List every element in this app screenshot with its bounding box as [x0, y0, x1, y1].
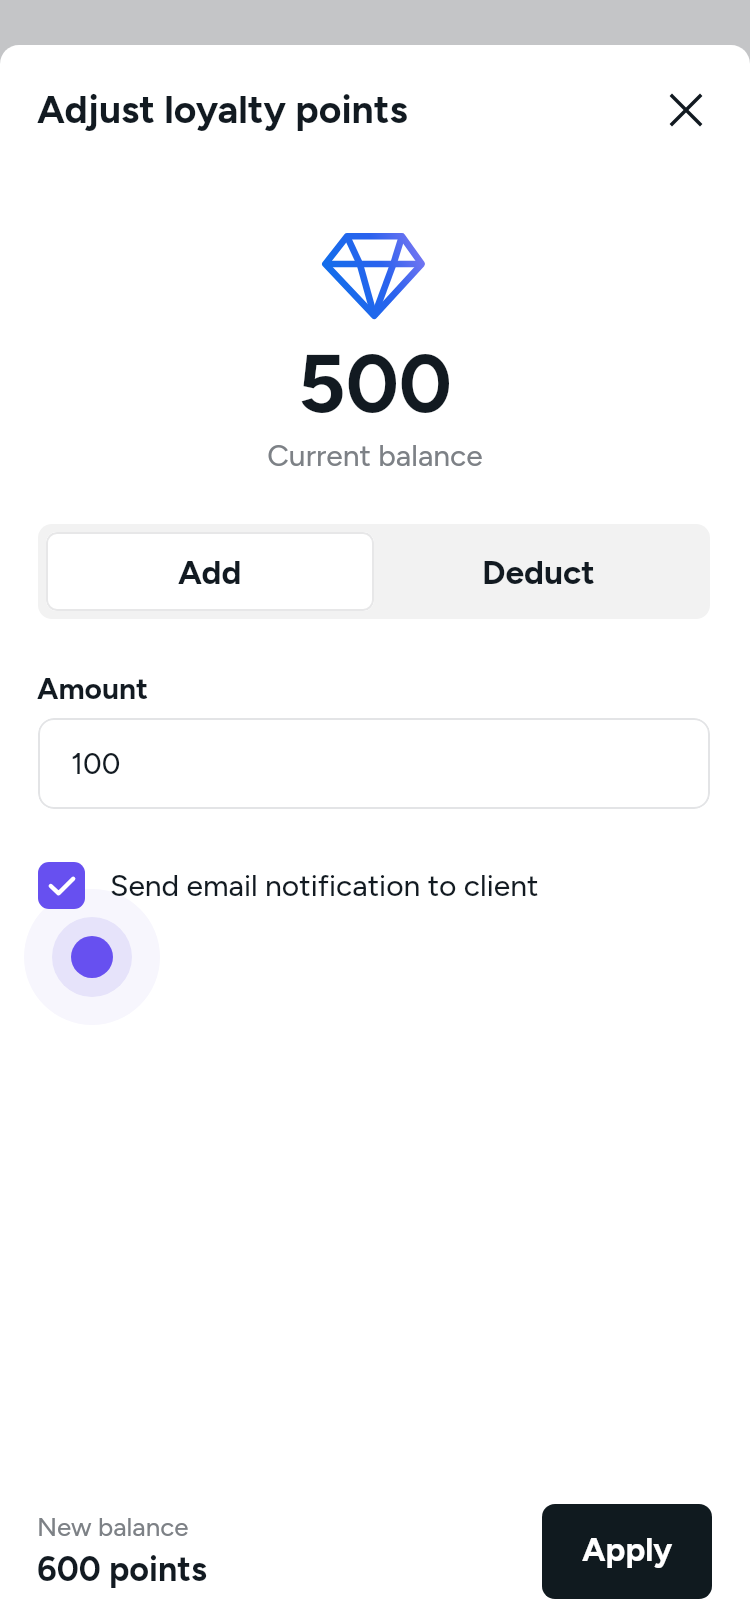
staticText: Adjust loyalty points: [37, 86, 408, 133]
button[interactable]: Apply: [542, 1504, 712, 1599]
staticText: 100: [71, 746, 121, 781]
button[interactable]: Deduct: [374, 532, 702, 611]
button[interactable]: Send email notification to client: [38, 862, 539, 909]
button[interactable]: 100: [38, 718, 710, 809]
staticText: Current balance: [0, 437, 750, 473]
button[interactable]: Add: [46, 532, 374, 611]
staticText: Amount: [37, 670, 149, 706]
button[interactable]: Close: [654, 78, 718, 142]
staticText: Add: [178, 552, 242, 592]
staticText: Deduct: [482, 552, 595, 592]
staticText: 500: [0, 334, 750, 432]
staticText: 600 points: [37, 1549, 207, 1590]
staticText: Apply: [582, 1530, 673, 1570]
staticText: New balance: [37, 1511, 189, 1542]
staticText: Send email notification to client: [110, 867, 539, 903]
